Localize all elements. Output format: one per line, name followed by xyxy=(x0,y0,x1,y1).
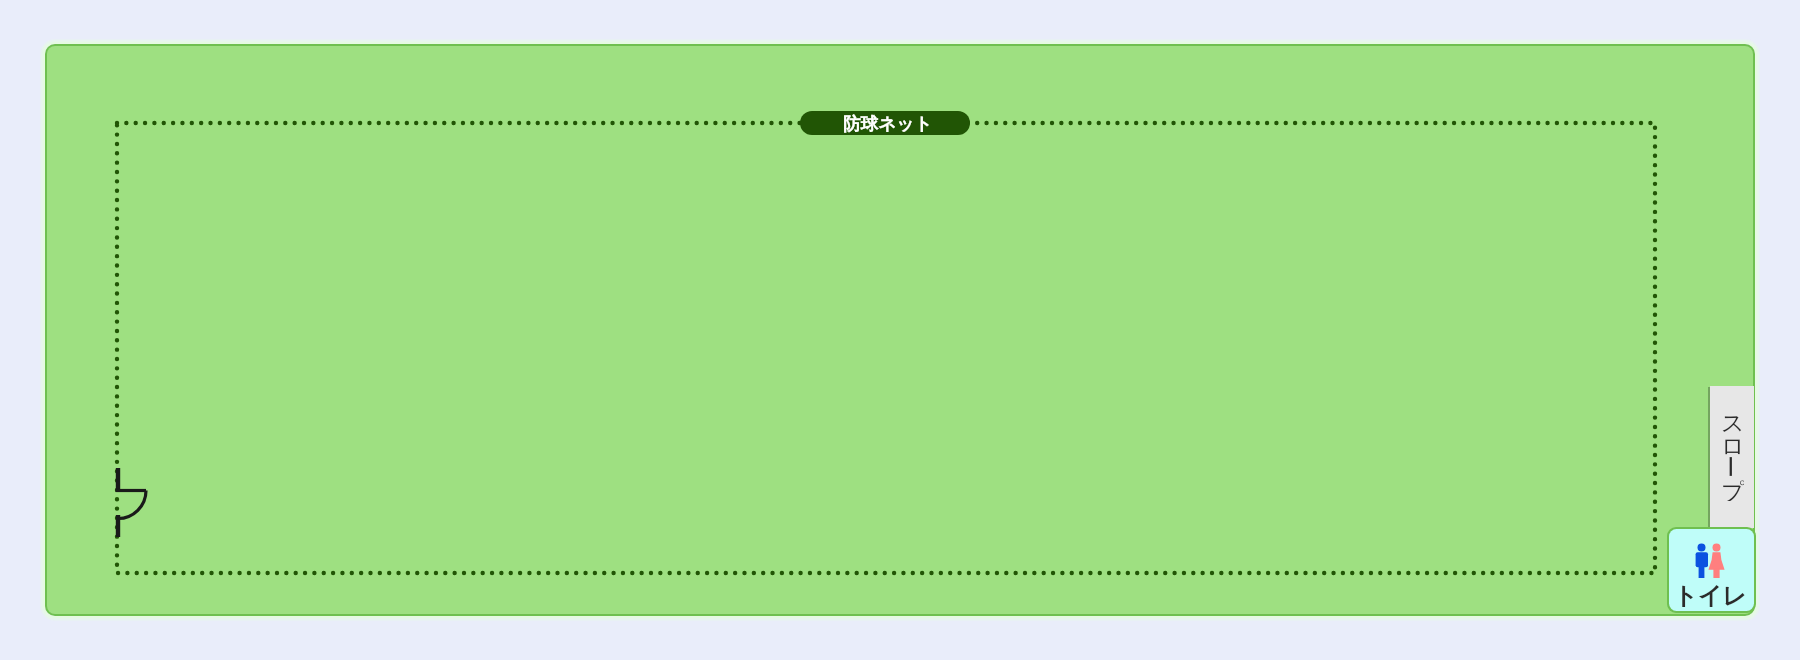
staticText: ロ xyxy=(1721,432,1744,455)
staticText: トイレ xyxy=(1673,581,1747,611)
button[interactable]: ス xyxy=(1710,386,1754,528)
staticText: プ xyxy=(1721,478,1744,501)
button[interactable]: 防球ネット xyxy=(800,111,970,135)
staticText: 防球ネット xyxy=(843,113,933,135)
button[interactable]: Entrance door xyxy=(110,460,156,548)
button[interactable]: Restroom xyxy=(1669,529,1754,611)
staticText: ー xyxy=(1721,455,1744,478)
other: Restroom xyxy=(1694,543,1728,579)
staticText: ス xyxy=(1721,409,1744,432)
